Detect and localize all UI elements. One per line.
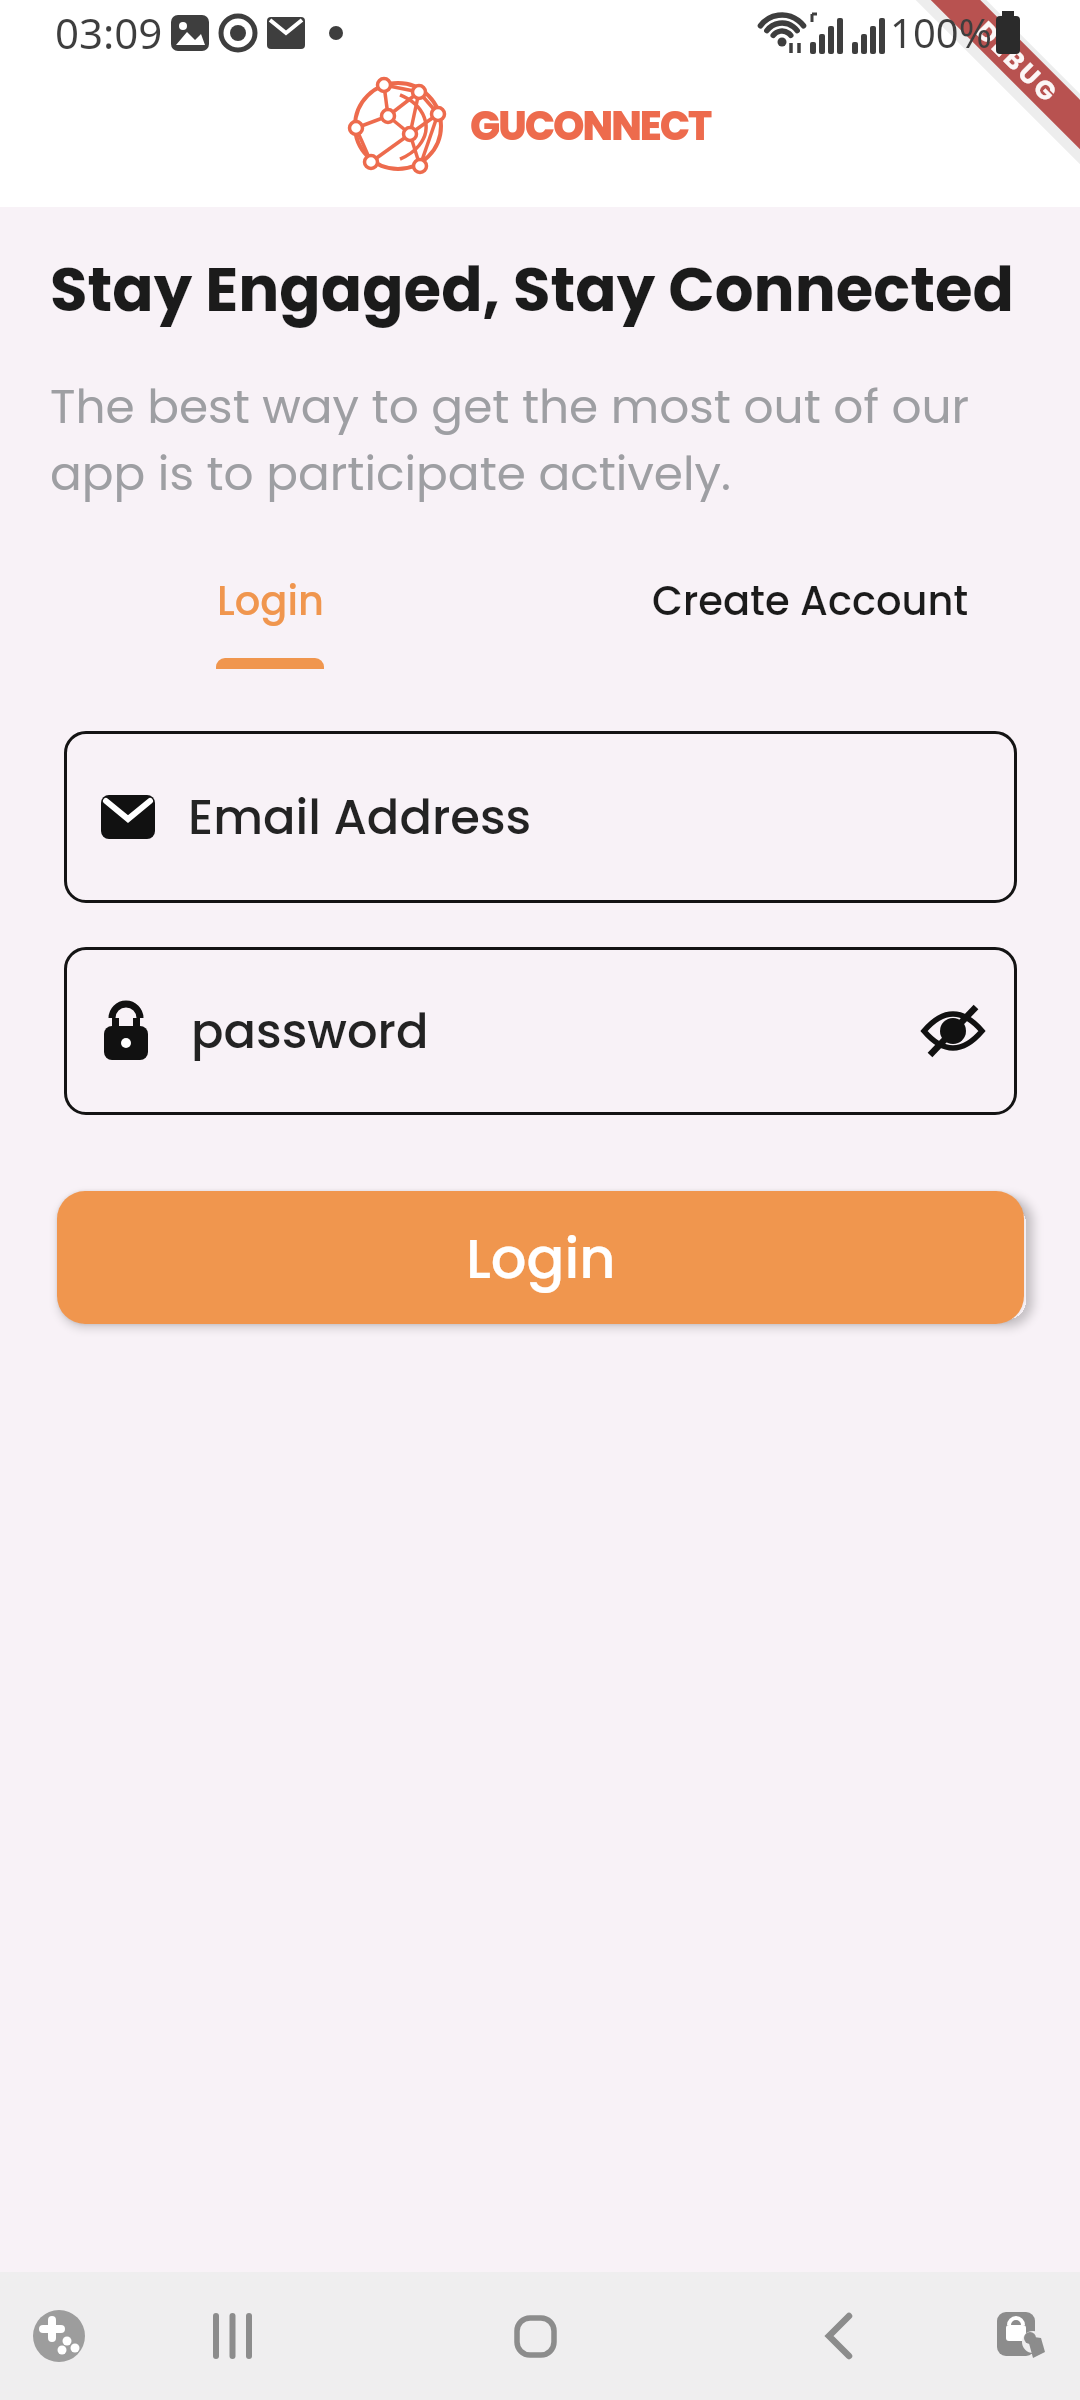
staticText: DEBUG — [969, 13, 1067, 112]
button[interactable] — [514, 2315, 556, 2357]
button[interactable]: Login — [57, 1191, 1024, 1324]
button[interactable] — [922, 1005, 984, 1057]
button[interactable]: password — [64, 947, 1017, 1115]
staticText: Stay Engaged, Stay Connected — [50, 247, 1014, 332]
button[interactable]: Create Account — [540, 573, 1080, 629]
staticText: Email Address — [188, 784, 532, 851]
button[interactable]: Email Address — [64, 731, 1017, 903]
staticText: password — [191, 998, 429, 1065]
button[interactable] — [997, 2311, 1047, 2361]
button[interactable] — [826, 2314, 852, 2358]
button[interactable] — [213, 2315, 257, 2357]
staticText: 03:09 — [55, 4, 163, 61]
staticText: Login — [217, 573, 324, 629]
staticText: GUCONNECT — [470, 98, 711, 154]
staticText: Create Account — [652, 573, 969, 629]
staticText: 100% — [890, 5, 992, 59]
button[interactable] — [33, 2310, 85, 2362]
button[interactable]: Login — [0, 573, 540, 669]
staticText: The best way to get the most out of our … — [50, 374, 970, 507]
staticText: Login — [466, 1219, 616, 1297]
